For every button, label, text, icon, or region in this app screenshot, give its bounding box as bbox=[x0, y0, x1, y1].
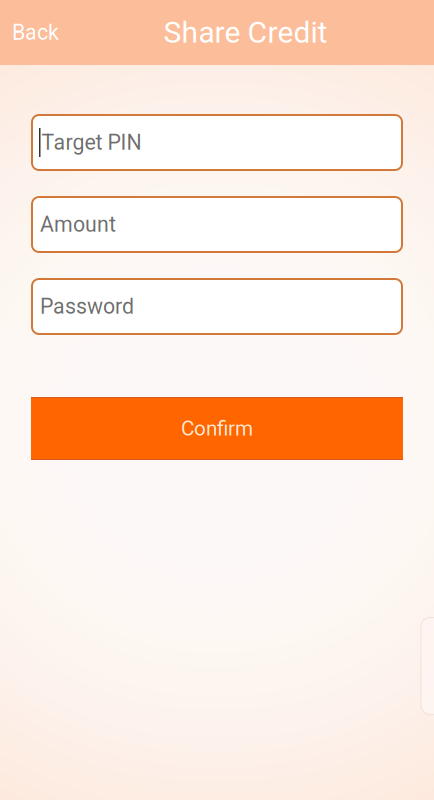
staticText: Amount bbox=[40, 212, 116, 237]
button[interactable]: Confirm bbox=[31, 397, 403, 460]
button[interactable]: Back bbox=[0, 0, 65, 65]
staticText: Target PIN bbox=[41, 130, 141, 155]
staticText: Confirm bbox=[181, 416, 253, 441]
staticText: Password bbox=[40, 294, 134, 319]
staticText: Back bbox=[12, 20, 59, 45]
staticText: Share Credit bbox=[163, 15, 327, 50]
